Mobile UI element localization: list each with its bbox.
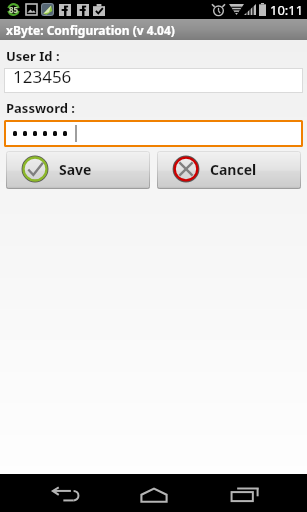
button[interactable]: Back — [24, 474, 94, 512]
button[interactable] — [4, 120, 303, 147]
staticText: 10:11 — [270, 1, 304, 19]
staticText: xByte: Configuration (v 4.04) — [6, 22, 175, 38]
staticText: Cancel — [210, 160, 257, 179]
button[interactable]: 123456 — [4, 68, 303, 93]
button[interactable]: Recent apps — [213, 474, 283, 512]
staticText: 123456 — [13, 65, 72, 88]
button[interactable]: Home — [119, 474, 189, 512]
staticText: User Id : — [6, 47, 60, 65]
staticText: 85 — [9, 4, 19, 15]
staticText: Password : — [6, 99, 75, 117]
staticText: Save — [59, 160, 92, 179]
button[interactable]: Cancel — [157, 151, 301, 189]
button[interactable]: Save — [6, 151, 150, 189]
